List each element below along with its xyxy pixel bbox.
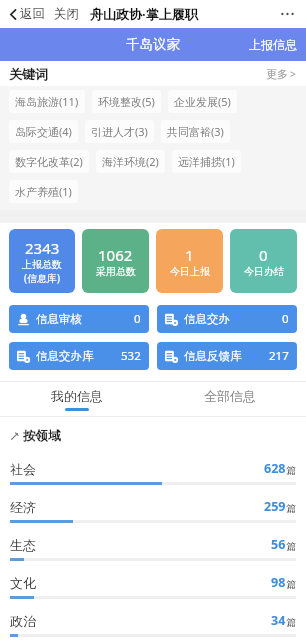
staticText: 按领域 bbox=[23, 428, 61, 444]
button[interactable]: 2343 bbox=[9, 229, 75, 293]
staticText: 今日上报 bbox=[170, 265, 210, 278]
button[interactable]: 关闭 bbox=[52, 3, 81, 25]
staticText: 篇 bbox=[286, 616, 296, 629]
staticText: 共同富裕(3) bbox=[167, 124, 224, 139]
button[interactable]: 环境整改(5) bbox=[92, 90, 161, 113]
staticText: 98 bbox=[271, 574, 286, 591]
staticText: 2343 bbox=[25, 238, 60, 258]
staticText: 舟山政协·掌上履职 bbox=[90, 5, 198, 23]
staticText: 关闭 bbox=[54, 6, 79, 22]
button[interactable]: 1 bbox=[156, 229, 223, 293]
staticText: 篇 bbox=[286, 540, 296, 553]
staticText: > bbox=[290, 67, 296, 81]
staticText: 水产养殖(1) bbox=[15, 184, 72, 199]
staticText: 上报信息 bbox=[249, 37, 297, 52]
button[interactable]: 生态 bbox=[0, 529, 306, 567]
staticText: 引进人才(3) bbox=[91, 124, 148, 139]
staticText: 34 bbox=[271, 612, 286, 629]
staticText: 今日办结 bbox=[244, 265, 284, 278]
button[interactable]: 千岛议家 bbox=[118, 31, 188, 58]
staticText: 数字化改革(2) bbox=[15, 154, 83, 169]
button[interactable]: 政治 bbox=[0, 605, 306, 640]
button[interactable]: 海岛旅游(11) bbox=[9, 90, 85, 113]
staticText: 社会 bbox=[10, 461, 36, 477]
button[interactable]: 数字化改革(2) bbox=[9, 150, 89, 173]
button[interactable]: 更多 bbox=[262, 63, 300, 85]
staticText: 海岛旅游(11) bbox=[15, 94, 79, 109]
staticText: 信息审核 bbox=[36, 312, 82, 326]
button[interactable]: 企业发展(5) bbox=[168, 90, 237, 113]
button[interactable]: 我的信息 bbox=[0, 382, 153, 416]
staticText: 返回 bbox=[20, 6, 45, 22]
staticText: 56 bbox=[271, 536, 286, 553]
staticText: 0 bbox=[282, 311, 289, 327]
staticText: 远洋捕捞(1) bbox=[178, 154, 235, 169]
staticText: 信息交办库 bbox=[36, 349, 94, 363]
staticText: 217 bbox=[269, 348, 289, 364]
staticText: 篇 bbox=[286, 578, 296, 591]
staticText: 我的信息 bbox=[51, 388, 103, 404]
staticText: 篇 bbox=[286, 502, 296, 515]
button[interactable]: 全部信息 bbox=[153, 382, 306, 416]
button[interactable]: 信息反馈库 bbox=[157, 342, 297, 370]
staticText: 篇 bbox=[286, 464, 296, 477]
button[interactable]: 岛际交通(4) bbox=[9, 120, 78, 143]
button[interactable]: 信息交办库 bbox=[9, 342, 149, 370]
staticText: 628 bbox=[264, 460, 286, 477]
staticText: 文化 bbox=[10, 575, 36, 591]
button[interactable]: 社会 bbox=[0, 453, 306, 491]
staticText: 采用总数 bbox=[96, 265, 136, 278]
button[interactable]: 信息审核 bbox=[9, 305, 149, 333]
button[interactable]: 海洋环境(2) bbox=[96, 150, 165, 173]
button[interactable]: 返回 bbox=[8, 3, 47, 25]
staticText: 环境整改(5) bbox=[98, 94, 155, 109]
button[interactable]: 1062 bbox=[82, 229, 149, 293]
staticText: 信息交办 bbox=[184, 312, 230, 326]
staticText: 1 bbox=[185, 245, 194, 265]
staticText: 全部信息 bbox=[204, 388, 256, 404]
staticText: 千岛议家 bbox=[126, 36, 180, 53]
staticText: 0 bbox=[134, 311, 141, 327]
staticText: 政治 bbox=[10, 613, 36, 629]
button[interactable]: 信息交办 bbox=[157, 305, 297, 333]
staticText: 1062 bbox=[98, 245, 133, 265]
button[interactable]: 上报信息 bbox=[240, 32, 306, 57]
button[interactable]: 文化 bbox=[0, 567, 306, 605]
button[interactable]: 远洋捕捞(1) bbox=[172, 150, 241, 173]
staticText: 上报总数 bbox=[22, 258, 62, 271]
button[interactable]: More options bbox=[276, 3, 298, 25]
staticText: 关键词 bbox=[9, 66, 48, 82]
button[interactable]: 经济 bbox=[0, 491, 306, 529]
staticText: 岛际交通(4) bbox=[15, 124, 72, 139]
button[interactable]: 水产养殖(1) bbox=[9, 180, 78, 203]
staticText: 532 bbox=[121, 348, 141, 364]
staticText: 经济 bbox=[10, 499, 36, 515]
staticText: 259 bbox=[264, 498, 286, 515]
staticText: 海洋环境(2) bbox=[102, 154, 159, 169]
button[interactable]: 引进人才(3) bbox=[85, 120, 154, 143]
button[interactable]: 0 bbox=[230, 229, 297, 293]
button[interactable]: 共同富裕(3) bbox=[161, 120, 230, 143]
staticText: 生态 bbox=[10, 537, 36, 553]
staticText: 0 bbox=[259, 245, 268, 265]
staticText: 信息反馈库 bbox=[184, 349, 242, 363]
staticText: (信息库) bbox=[24, 271, 60, 285]
staticText: 企业发展(5) bbox=[174, 94, 231, 109]
staticText: 更多 bbox=[266, 67, 288, 81]
